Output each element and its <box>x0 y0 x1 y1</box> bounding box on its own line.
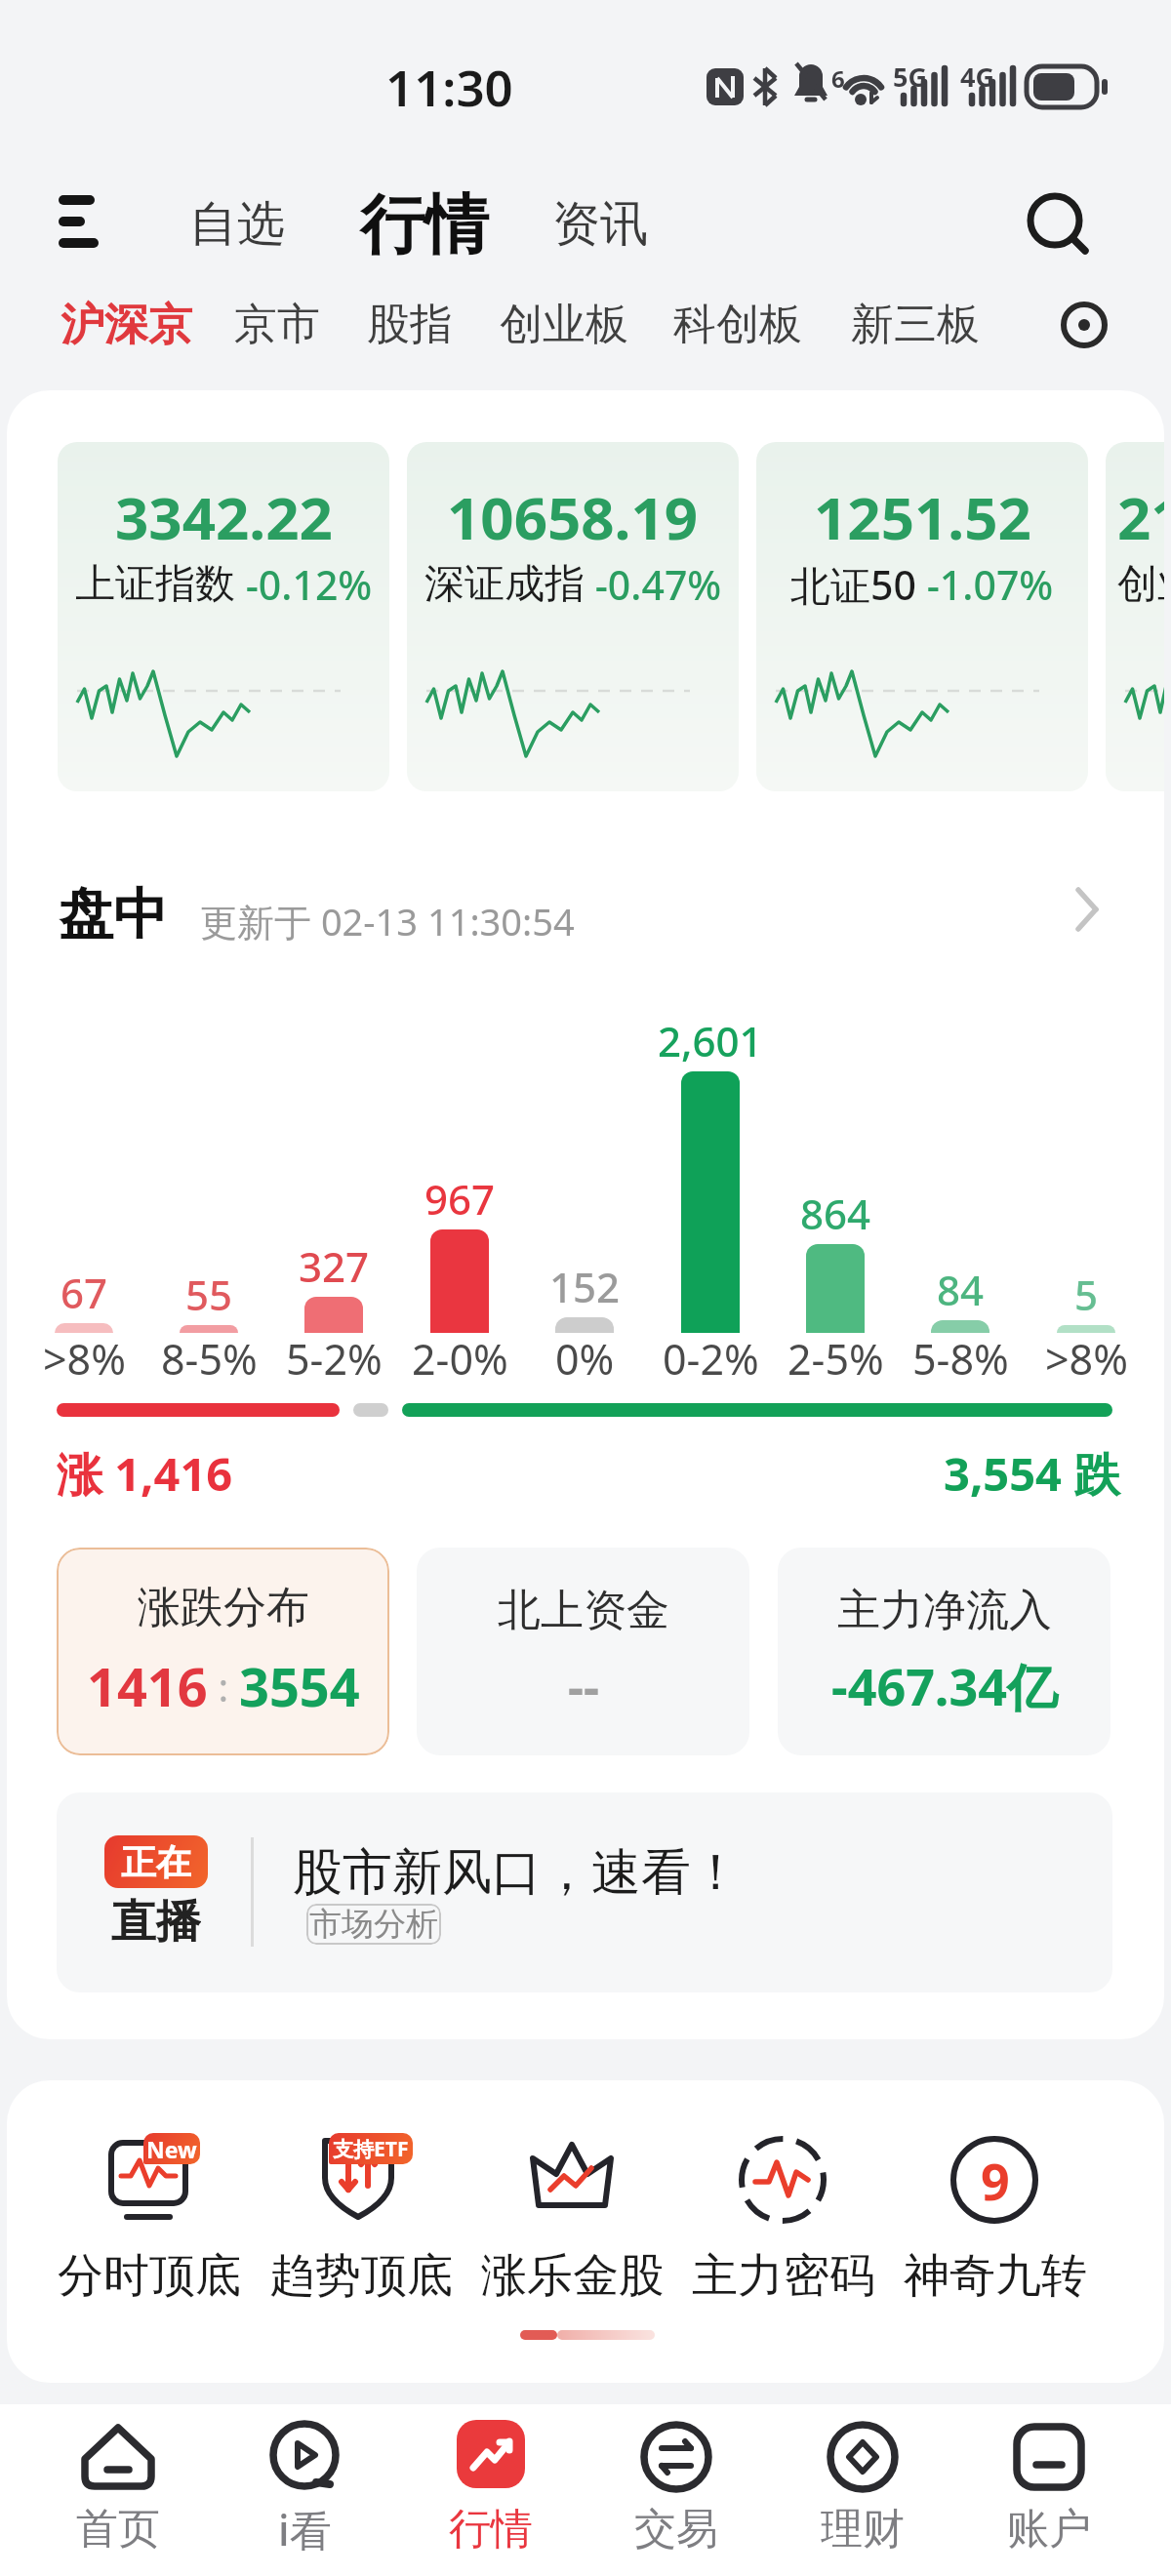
staticText: -1.07% <box>916 557 1054 612</box>
button[interactable] <box>59 195 107 254</box>
button[interactable] <box>686 2119 881 2354</box>
button[interactable]: 新三板 <box>851 298 980 351</box>
staticText: 趋势顶底 <box>269 2247 453 2305</box>
button[interactable]: 10658.19 <box>407 442 739 791</box>
staticText: 967 <box>424 1171 496 1227</box>
staticText: 自选 <box>189 194 285 255</box>
staticText: 理财 <box>821 2503 905 2556</box>
button[interactable]: 科创板 <box>673 298 802 351</box>
staticText: 67 <box>61 1265 108 1320</box>
staticText: 行情 <box>360 184 489 265</box>
staticText: 正在 <box>121 1840 191 1884</box>
staticText: 北证50 <box>790 557 916 612</box>
staticText: 支持ETF <box>333 2135 409 2163</box>
button[interactable]: 正在 <box>57 1792 1112 1992</box>
staticText: 9 <box>981 2146 1010 2215</box>
staticText: 3342.22 <box>115 477 333 557</box>
staticText: 盘中 <box>59 880 168 949</box>
staticText: 4G <box>960 59 994 95</box>
staticText: 6 <box>831 62 845 95</box>
staticText: 市场分析 <box>309 1904 438 1945</box>
staticText: 1416 <box>87 1650 208 1722</box>
staticText: 5 <box>1074 1267 1099 1322</box>
staticText: 主力密码 <box>692 2247 875 2305</box>
button[interactable] <box>263 2119 459 2354</box>
button[interactable] <box>475 2119 670 2354</box>
staticText: -- <box>568 1653 599 1719</box>
staticText: 资讯 <box>552 194 648 255</box>
staticText: 1251.52 <box>814 477 1031 557</box>
staticText: New <box>146 2134 197 2164</box>
staticText: 11:30 <box>385 53 513 120</box>
staticText: 2,601 <box>658 1013 763 1068</box>
staticText: 首页 <box>76 2503 160 2556</box>
staticText: 行情 <box>449 2503 533 2556</box>
staticText: 2180.99 <box>1117 477 1164 557</box>
staticText: 直播 <box>111 1894 201 1949</box>
staticText: 涨跌分布 <box>138 1581 309 1634</box>
button[interactable] <box>30 2404 206 2576</box>
staticText: 3,554 跌 <box>944 1442 1120 1505</box>
button[interactable] <box>898 2119 1093 2354</box>
button[interactable] <box>217 2404 392 2576</box>
button[interactable]: 主力净流入 <box>778 1548 1110 1755</box>
staticText: 3554 <box>239 1650 360 1722</box>
staticText: 分时顶底 <box>58 2247 241 2305</box>
staticText: 864 <box>800 1186 871 1241</box>
staticText: 0% <box>555 1330 615 1388</box>
staticText: 5-2% <box>286 1330 383 1388</box>
staticText: -0.12% <box>235 557 373 612</box>
button[interactable]: 股指 <box>367 298 453 351</box>
staticText: 创业板指 <box>1117 559 1164 610</box>
staticText: 5G <box>893 59 927 95</box>
button[interactable]: 京市 <box>234 298 320 351</box>
staticText: 深证成指 <box>424 559 585 610</box>
button[interactable] <box>52 2119 247 2354</box>
staticText: -0.47% <box>585 557 722 612</box>
staticText: 神奇九转 <box>904 2247 1087 2305</box>
staticText: 152 <box>549 1259 621 1314</box>
staticText: 主力净流入 <box>837 1584 1052 1637</box>
staticText: : <box>208 1660 239 1712</box>
staticText: 北上资金 <box>498 1584 669 1637</box>
staticText: 账户 <box>1007 2503 1091 2556</box>
staticText: 0-2% <box>663 1330 759 1388</box>
button[interactable]: 资讯 <box>522 166 678 283</box>
staticText: 交易 <box>634 2503 718 2556</box>
button[interactable] <box>775 2404 950 2576</box>
button[interactable]: 行情 <box>337 161 512 288</box>
button[interactable]: 北上资金 <box>417 1548 749 1755</box>
button[interactable]: 自选 <box>140 166 335 283</box>
staticText: 8-5% <box>161 1330 258 1388</box>
staticText: 84 <box>937 1262 985 1317</box>
staticText: 55 <box>185 1267 233 1322</box>
button[interactable] <box>1060 301 1109 349</box>
button[interactable]: 创业板 <box>500 298 628 351</box>
staticText: i看 <box>278 2501 332 2558</box>
button[interactable]: 沪深京 <box>61 298 192 353</box>
staticText: 10658.19 <box>447 477 699 557</box>
button[interactable] <box>403 2404 579 2576</box>
staticText: >8% <box>1045 1330 1128 1388</box>
button[interactable]: 3342.22 <box>58 442 389 791</box>
staticText: 股市新风口，速看！ <box>293 1841 741 1904</box>
staticText: 涨乐金股 <box>481 2247 665 2305</box>
button[interactable]: 2180.99 <box>1106 442 1164 791</box>
staticText: 涨 1,416 <box>57 1442 233 1505</box>
staticText: 327 <box>299 1238 370 1294</box>
staticText: 更新于 02-13 11:30:54 <box>200 896 575 946</box>
button[interactable]: 涨跌分布 <box>57 1548 389 1755</box>
staticText: 2-0% <box>412 1330 508 1388</box>
button[interactable] <box>588 2404 764 2576</box>
button[interactable] <box>1025 191 1093 260</box>
staticText: 5-8% <box>912 1330 1009 1388</box>
staticText: >8% <box>43 1330 126 1388</box>
staticText: 2-5% <box>787 1330 884 1388</box>
staticText: -467.34亿 <box>831 1651 1058 1720</box>
staticText: 上证指数 <box>75 559 235 610</box>
button[interactable] <box>961 2404 1137 2576</box>
button[interactable]: 1251.52 <box>756 442 1088 791</box>
button[interactable] <box>46 859 1125 956</box>
